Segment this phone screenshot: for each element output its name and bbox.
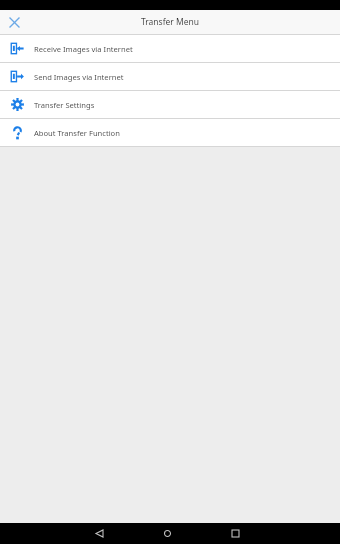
staticText: Transfer Settings xyxy=(34,100,95,110)
button[interactable]: Home xyxy=(154,523,180,544)
staticText: Transfer Menu xyxy=(0,16,340,28)
button[interactable]: Receive Images via Internet xyxy=(0,35,340,62)
button[interactable]: About Transfer Function xyxy=(0,119,340,146)
staticText: Receive Images via Internet xyxy=(34,44,133,54)
button[interactable]: Send Images via Internet xyxy=(0,63,340,90)
button[interactable]: Recent apps xyxy=(222,523,248,544)
staticText: About Transfer Function xyxy=(34,128,120,138)
staticText: Send Images via Internet xyxy=(34,72,124,82)
button[interactable]: Transfer Settings xyxy=(0,91,340,118)
button[interactable]: Back xyxy=(86,523,112,544)
button[interactable]: Close xyxy=(6,14,23,31)
